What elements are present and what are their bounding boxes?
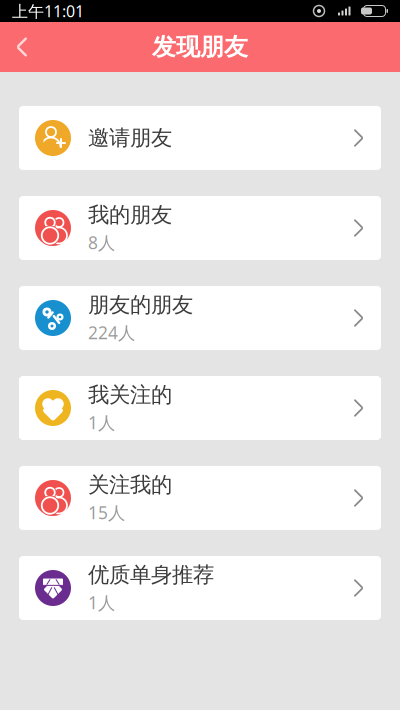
staticText: 15人: [88, 501, 125, 524]
button[interactable]: 关注我的: [19, 466, 381, 530]
button[interactable]: 我关注的: [19, 376, 381, 440]
staticText: 我关注的: [88, 382, 172, 408]
staticText: 1人: [88, 411, 115, 434]
button[interactable]: 返回: [0, 22, 44, 72]
staticText: 优质单身推荐: [88, 562, 214, 588]
staticText: 224人: [88, 321, 135, 344]
button[interactable]: 我的朋友: [19, 196, 381, 260]
button[interactable]: 朋友的朋友: [19, 286, 381, 350]
button[interactable]: 邀请朋友: [19, 106, 381, 170]
staticText: 关注我的: [88, 472, 172, 498]
button[interactable]: 优质单身推荐: [19, 556, 381, 620]
staticText: 我的朋友: [88, 202, 172, 228]
staticText: 朋友的朋友: [88, 292, 193, 318]
staticText: 邀请朋友: [88, 125, 172, 151]
staticText: 发现朋友: [152, 32, 248, 62]
staticText: 上午11:01: [12, 0, 84, 22]
staticText: 8人: [88, 231, 115, 254]
staticText: 1人: [88, 591, 115, 614]
